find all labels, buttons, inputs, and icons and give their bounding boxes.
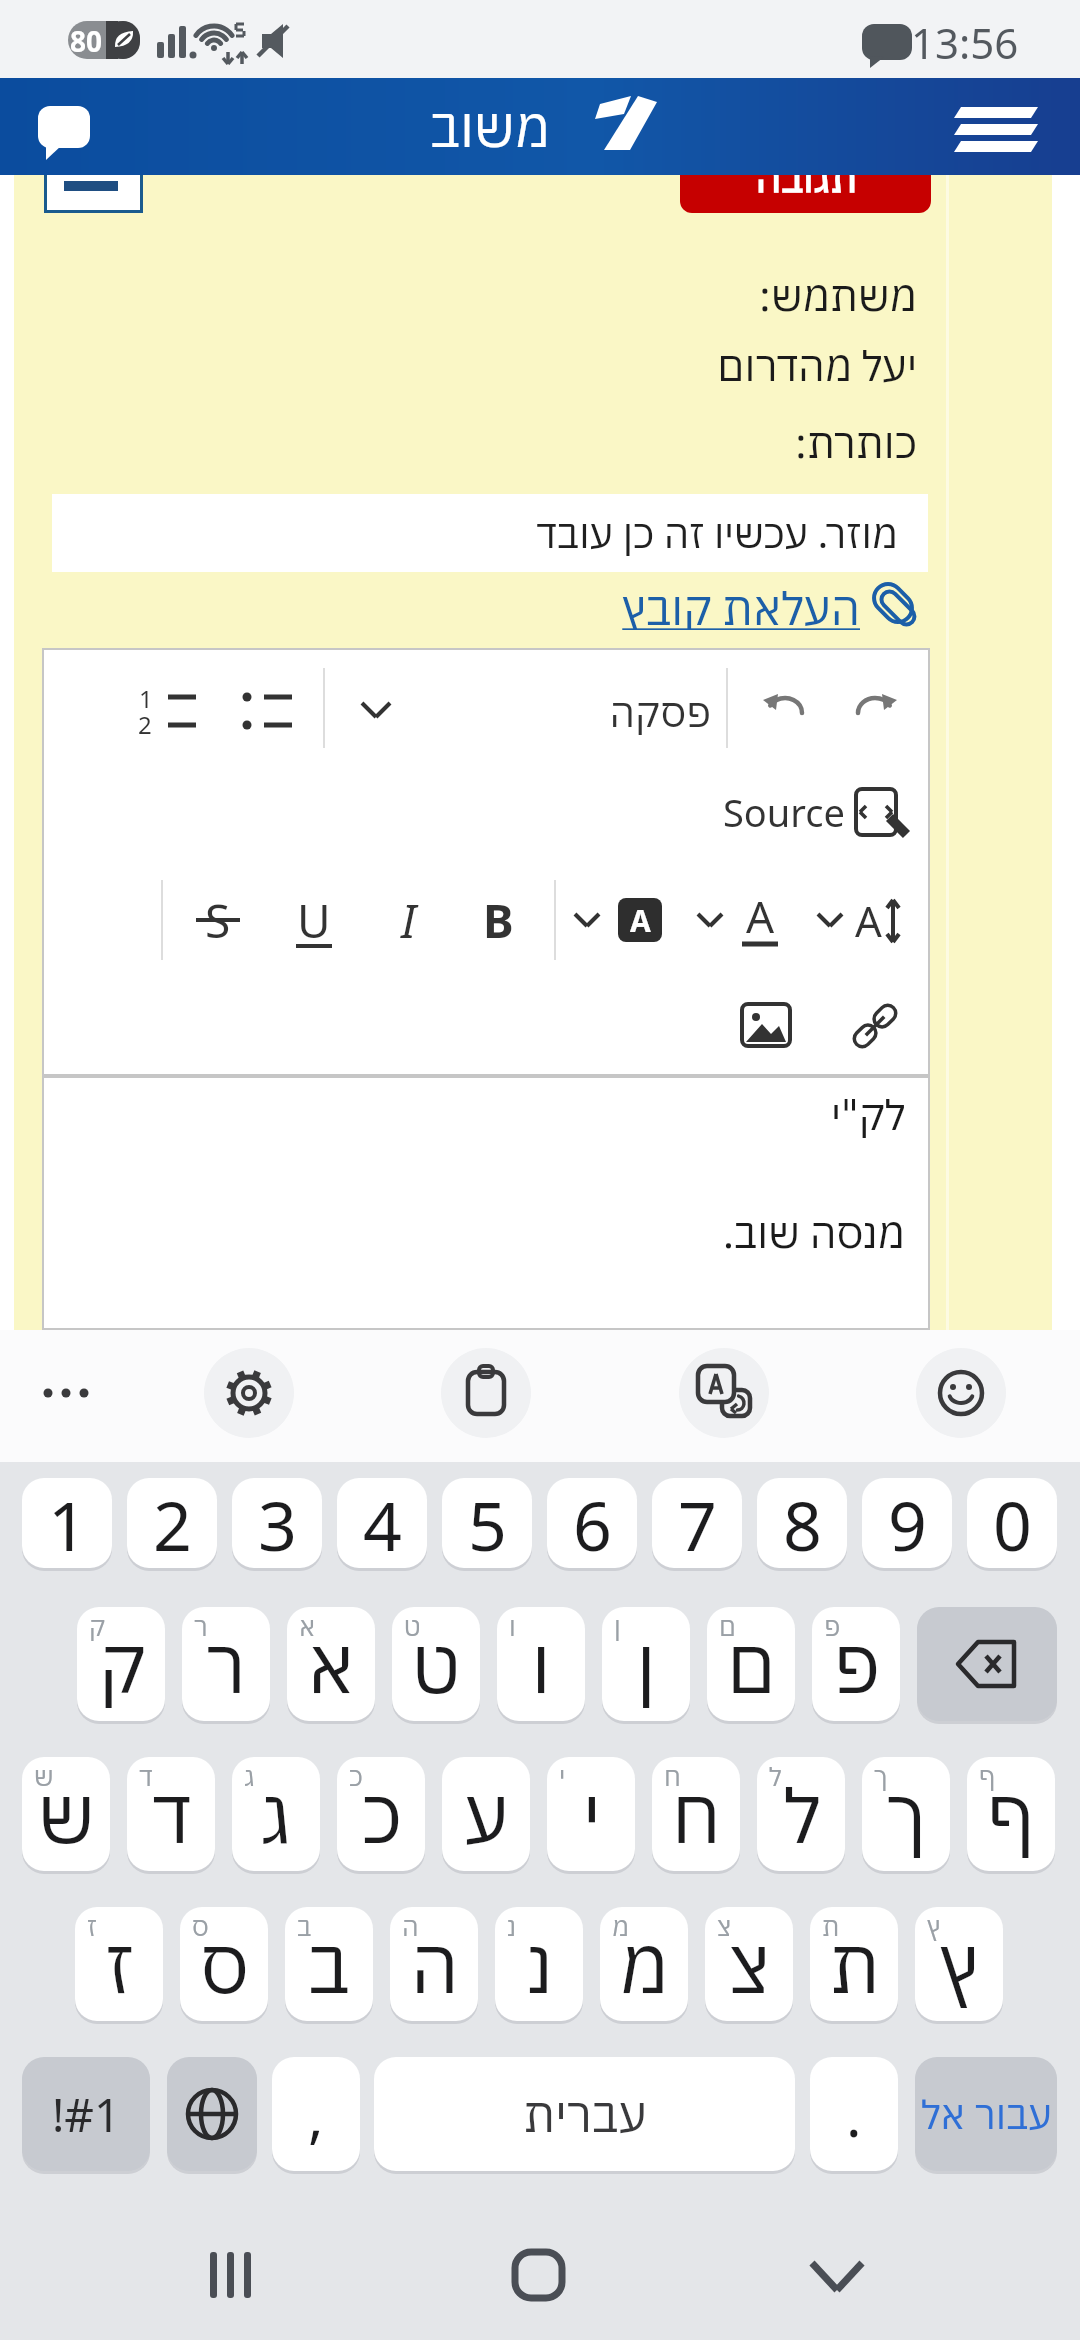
- staticText: תגובה: [755, 151, 857, 203]
- button[interactable]: [460, 882, 526, 956]
- button[interactable]: [284, 882, 346, 956]
- button[interactable]: 5: [442, 1478, 532, 1568]
- button[interactable]: א: [287, 1607, 375, 1721]
- button[interactable]: [700, 778, 912, 844]
- button[interactable]: מוזר. עכשיו זה כן עובד: [52, 494, 928, 572]
- button[interactable]: ז: [75, 1907, 163, 2021]
- button[interactable]: ך: [862, 1757, 950, 1871]
- button[interactable]: A: [618, 898, 662, 942]
- button[interactable]: 9: [862, 1478, 952, 1568]
- button[interactable]: פ: [812, 1607, 900, 1721]
- button[interactable]: ה: [390, 1907, 478, 2021]
- button[interactable]: ל: [757, 1757, 845, 1871]
- button[interactable]: 0: [967, 1478, 1057, 1568]
- button[interactable]: [42, 1076, 930, 1330]
- button[interactable]: [748, 670, 820, 752]
- staticText: עבור אל: [921, 2088, 1052, 2140]
- staticText: U: [297, 889, 331, 952]
- button[interactable]: [688, 884, 790, 956]
- staticText: ל: [783, 1765, 820, 1864]
- staticText: ר: [194, 1609, 208, 1643]
- staticText: A: [630, 900, 651, 941]
- button[interactable]: [565, 884, 667, 956]
- staticText: 7: [678, 1478, 717, 1568]
- button[interactable]: !#1: [22, 2057, 150, 2171]
- button[interactable]: ט: [392, 1607, 480, 1721]
- button[interactable]: ק: [77, 1607, 165, 1721]
- button[interactable]: ס: [180, 1907, 268, 2021]
- button[interactable]: [917, 1607, 1057, 1721]
- button[interactable]: [795, 2235, 885, 2315]
- button[interactable]: ר: [182, 1607, 270, 1721]
- button[interactable]: ג: [232, 1757, 320, 1871]
- button[interactable]: [838, 992, 914, 1058]
- button[interactable]: [128, 670, 212, 752]
- staticText: ז: [105, 1915, 134, 2014]
- button[interactable]: [808, 884, 908, 956]
- button[interactable]: ם: [707, 1607, 795, 1721]
- staticText: ש: [37, 1765, 95, 1864]
- button[interactable]: מ: [600, 1907, 688, 2021]
- button[interactable]: [441, 1348, 531, 1438]
- staticText: 80: [70, 22, 103, 58]
- button[interactable]: [560, 670, 720, 752]
- button[interactable]: תגובה: [680, 140, 931, 213]
- staticText: ט: [411, 1615, 461, 1714]
- staticText: ד: [151, 1765, 192, 1864]
- button[interactable]: [190, 2235, 280, 2315]
- button[interactable]: ו: [497, 1607, 585, 1721]
- button[interactable]: [679, 1348, 769, 1438]
- button[interactable]: ח: [652, 1757, 740, 1871]
- button[interactable]: .: [810, 2057, 898, 2171]
- button[interactable]: ד: [127, 1757, 215, 1871]
- button[interactable]: ת: [810, 1907, 898, 2021]
- button[interactable]: [30, 95, 105, 170]
- button[interactable]: [372, 882, 434, 956]
- button[interactable]: [44, 140, 143, 213]
- button[interactable]: 1: [22, 1478, 112, 1568]
- button[interactable]: ש: [22, 1757, 110, 1871]
- button[interactable]: [167, 2057, 257, 2171]
- button[interactable]: 7: [652, 1478, 742, 1568]
- button[interactable]: 4: [337, 1478, 427, 1568]
- button[interactable]: 8: [757, 1478, 847, 1568]
- staticText: ם: [726, 1615, 776, 1714]
- staticText: ף: [979, 1759, 996, 1793]
- button[interactable]: העלאת קובץ: [520, 578, 860, 630]
- staticText: ג: [244, 1759, 255, 1793]
- staticText: ס: [200, 1915, 249, 2014]
- button[interactable]: עבור אל: [915, 2057, 1057, 2171]
- button[interactable]: [945, 95, 1045, 160]
- button[interactable]: ף: [967, 1757, 1055, 1871]
- button[interactable]: [343, 670, 405, 752]
- button[interactable]: נ: [495, 1907, 583, 2021]
- button[interactable]: 3: [232, 1478, 322, 1568]
- button[interactable]: [495, 2235, 585, 2315]
- button[interactable]: ץ: [915, 1907, 1003, 2021]
- button[interactable]: [30, 1358, 100, 1428]
- button[interactable]: 6: [547, 1478, 637, 1568]
- button[interactable]: [916, 1348, 1006, 1438]
- button[interactable]: צ: [705, 1907, 793, 2021]
- button[interactable]: [204, 1348, 294, 1438]
- staticText: מנסה שוב.: [722, 1205, 905, 1260]
- staticText: 2: [138, 708, 152, 738]
- button[interactable]: [226, 670, 308, 752]
- button[interactable]: ע: [442, 1757, 530, 1871]
- button[interactable]: ב: [285, 1907, 373, 2021]
- staticText: 1: [48, 1478, 87, 1568]
- staticText: ף: [987, 1765, 1035, 1864]
- staticText: צ: [717, 1909, 732, 1943]
- button[interactable]: [838, 670, 910, 752]
- staticText: S: [205, 889, 231, 952]
- button[interactable]: כ: [337, 1757, 425, 1871]
- button[interactable]: ,: [272, 2057, 360, 2171]
- button[interactable]: י: [547, 1757, 635, 1871]
- button[interactable]: [188, 882, 250, 956]
- button[interactable]: 2: [127, 1478, 217, 1568]
- staticText: A: [855, 892, 882, 949]
- staticText: ,: [308, 2075, 324, 2154]
- button[interactable]: ן: [602, 1607, 690, 1721]
- button[interactable]: [728, 992, 804, 1058]
- button[interactable]: עברית: [374, 2057, 795, 2171]
